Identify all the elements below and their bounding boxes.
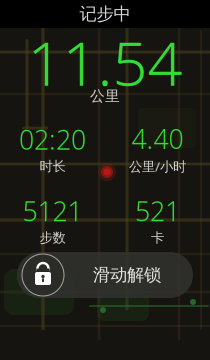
button[interactable]: 滑动解锁 (17, 252, 193, 298)
staticText: 11.54 (27, 21, 182, 103)
staticText: 公里 (90, 87, 120, 105)
staticText: 步数 (39, 229, 65, 246)
staticText: 滑动解锁 (93, 264, 161, 286)
staticText: 公里/小时 (129, 157, 186, 175)
staticText: 4.40 (131, 121, 183, 156)
staticText: 521 (135, 193, 180, 228)
staticText: 记步中 (79, 3, 130, 25)
staticText: 时长 (39, 158, 65, 174)
staticText: 卡 (151, 229, 164, 246)
staticText: 02:20 (19, 122, 86, 157)
staticText: 5121 (22, 193, 82, 228)
